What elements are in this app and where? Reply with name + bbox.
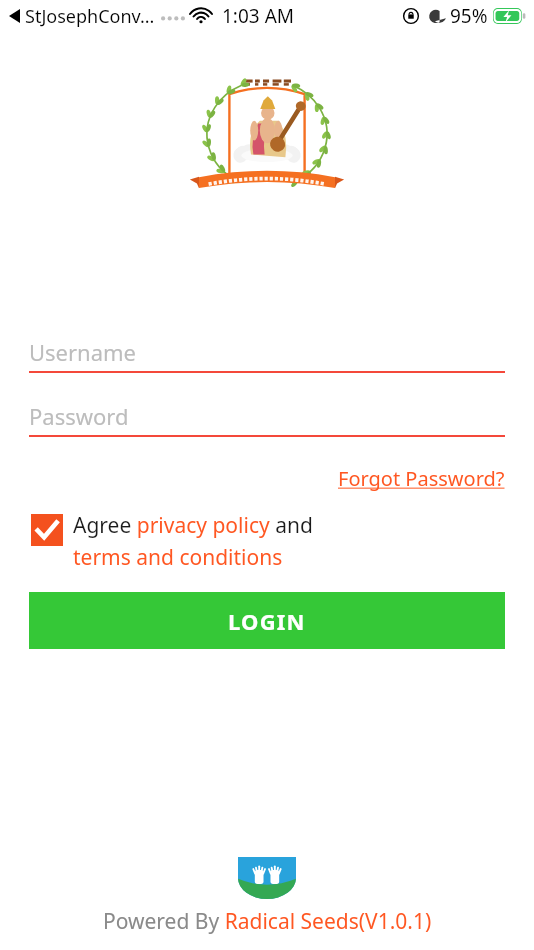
staticText: Powered By Radical Seeds(V1.0.1) (103, 907, 432, 936)
button[interactable]: Username (29, 332, 505, 373)
staticText: 1:03 AM (222, 3, 295, 29)
staticText: Username (29, 337, 137, 367)
staticText: terms and conditions (73, 543, 283, 572)
button[interactable]: Password (29, 396, 505, 437)
staticText: Password (29, 401, 129, 431)
staticText: Agree privacy policy and (73, 511, 313, 540)
staticText: StJosephConv... (25, 4, 155, 29)
staticText: Forgot Password? (338, 465, 505, 492)
button[interactable]: Forgot Password? (338, 463, 534, 494)
staticText: LOGIN (228, 606, 306, 636)
button[interactable]: Agree checkbox (0, 511, 534, 572)
other: Agree checkbox (31, 514, 63, 546)
staticText: 95% (450, 3, 488, 29)
button[interactable]: LOGIN (29, 592, 505, 649)
